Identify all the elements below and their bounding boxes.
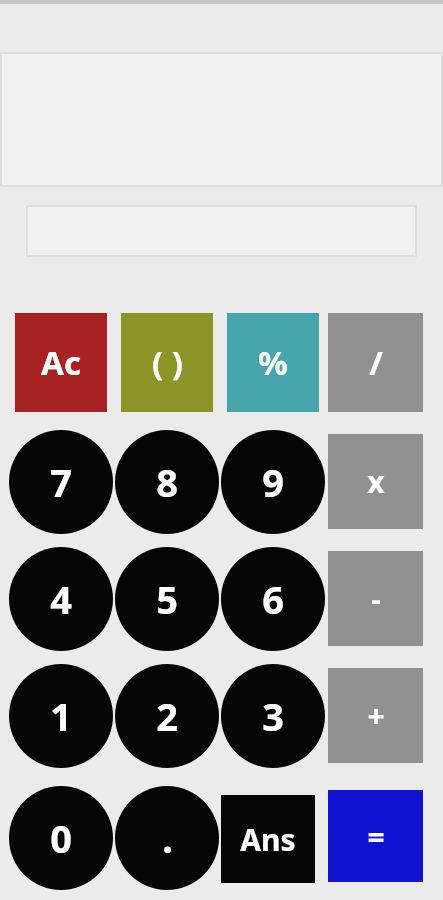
button[interactable]: 9 xyxy=(221,430,325,534)
staticText: 9 xyxy=(262,456,284,508)
staticText: 2 xyxy=(156,690,178,742)
button[interactable]: + xyxy=(328,668,423,763)
button[interactable]: / xyxy=(328,313,423,412)
button[interactable]: 1 xyxy=(9,664,113,768)
staticText: / xyxy=(369,340,383,385)
button[interactable]: 6 xyxy=(221,547,325,651)
button[interactable]: - xyxy=(328,551,423,646)
staticText: Ans xyxy=(240,819,296,860)
button[interactable]: 3 xyxy=(221,664,325,768)
button[interactable]: x xyxy=(328,434,423,529)
staticText: 1 xyxy=(50,690,72,742)
staticText: 0 xyxy=(50,812,72,864)
button[interactable]: 5 xyxy=(115,547,219,651)
staticText: 7 xyxy=(50,456,72,508)
staticText: 6 xyxy=(262,573,284,625)
button[interactable]: 8 xyxy=(115,430,219,534)
staticText: 4 xyxy=(50,573,72,625)
staticText: - xyxy=(371,578,381,619)
button[interactable]: 2 xyxy=(115,664,219,768)
button[interactable]: 7 xyxy=(9,430,113,534)
staticText: x xyxy=(367,461,385,502)
staticText: 8 xyxy=(156,456,178,508)
staticText: 3 xyxy=(262,690,284,742)
staticText: ( ) xyxy=(152,340,183,385)
button[interactable]: . xyxy=(115,786,219,890)
staticText: . xyxy=(162,812,173,864)
button[interactable]: = xyxy=(328,790,423,882)
staticText: Ac xyxy=(41,340,81,385)
button[interactable]: 4 xyxy=(9,547,113,651)
button[interactable]: ( ) xyxy=(121,313,213,412)
button[interactable]: % xyxy=(227,313,319,412)
staticText: 5 xyxy=(156,573,178,625)
button[interactable]: 0 xyxy=(9,786,113,890)
button[interactable]: Ans xyxy=(221,795,315,883)
staticText: + xyxy=(367,695,385,736)
button[interactable]: Ac xyxy=(15,313,107,412)
staticText: % xyxy=(258,340,288,385)
staticText: = xyxy=(367,816,385,857)
